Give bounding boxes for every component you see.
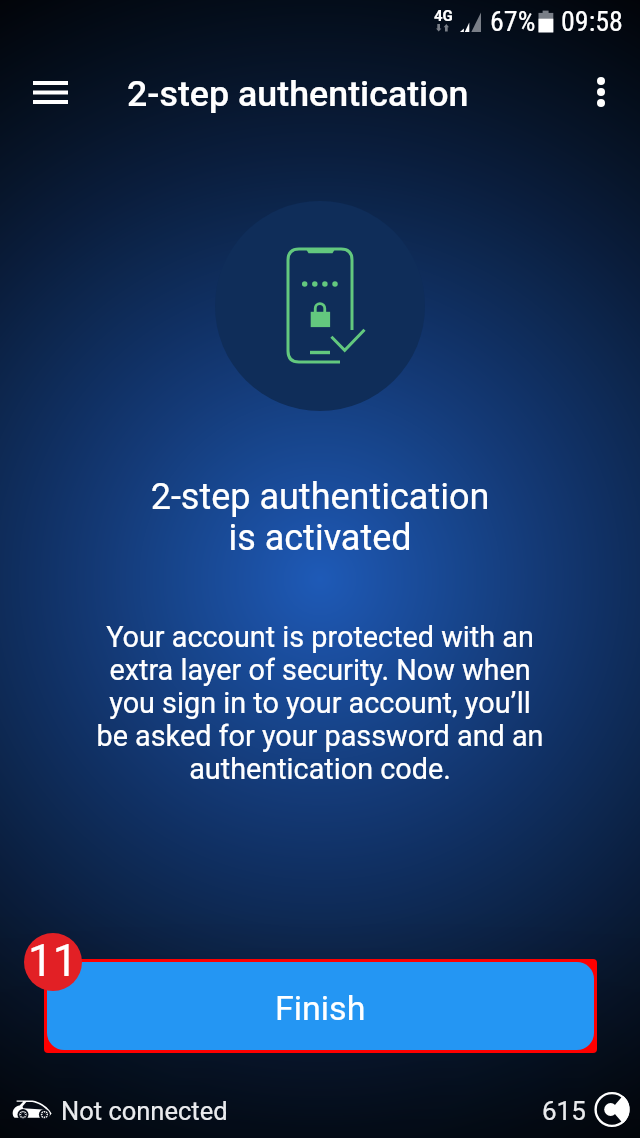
- button[interactable]: Voice assistant: [594, 1091, 630, 1127]
- button[interactable]: 11 notifications: [24, 933, 82, 991]
- staticText: 09:58: [561, 5, 623, 38]
- staticText: 615: [542, 1096, 586, 1126]
- staticText: 11: [28, 935, 78, 987]
- staticText: 4G: [434, 7, 453, 25]
- staticText: 67%: [490, 5, 536, 38]
- button[interactable]: More options: [573, 68, 629, 116]
- button[interactable]: Open navigation menu: [16, 68, 84, 116]
- button[interactable]: Finish: [47, 962, 594, 1050]
- staticText: 2-step authentication is activated: [0, 476, 640, 559]
- staticText: Your account is protected with an extra …: [0, 620, 640, 786]
- staticText: Finish: [275, 988, 366, 1028]
- staticText: 2-step authentication: [127, 73, 469, 115]
- staticText: Not connected: [61, 1096, 228, 1126]
- button[interactable]: Not connected: [12, 1092, 228, 1128]
